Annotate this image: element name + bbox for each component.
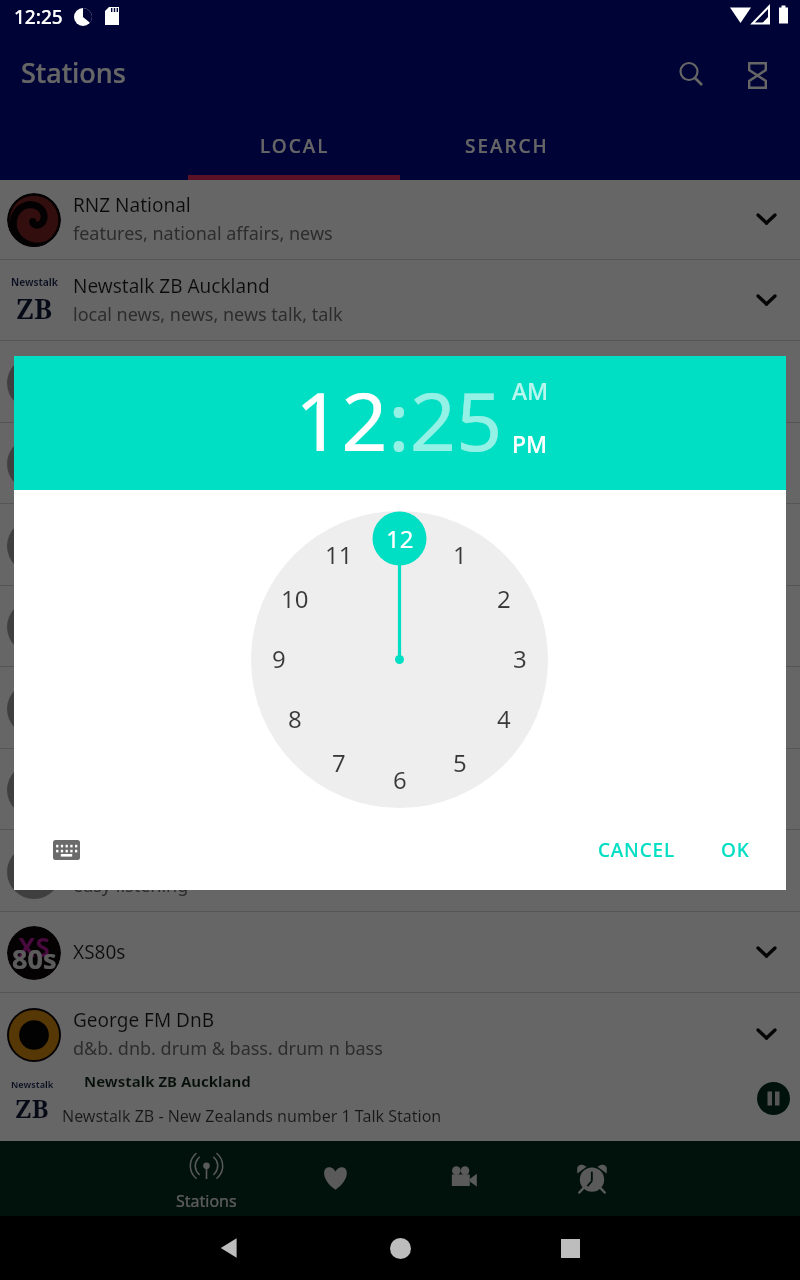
button[interactable]: Recents: [500, 1216, 640, 1280]
staticText: 8: [288, 702, 302, 735]
staticText: Radio Live: [73, 1088, 164, 1114]
staticText: CANCEL: [598, 837, 675, 863]
button[interactable]: Newstalk: [0, 260, 800, 341]
staticText: PM: [512, 428, 548, 459]
button[interactable]: CANCEL: [587, 826, 685, 874]
button[interactable]: 11: [315, 534, 363, 574]
button[interactable]: XS: [0, 912, 800, 993]
staticText: 6: [393, 763, 407, 796]
button[interactable]: Newstalk: [0, 1062, 800, 1141]
button[interactable]: Alarms: [528, 1141, 656, 1216]
staticText: Coast: [73, 844, 124, 870]
button[interactable]: Mai FM: [0, 505, 800, 586]
button[interactable]: LOCAL: [188, 116, 400, 176]
staticText: Stations: [176, 1190, 237, 1212]
staticText: SEARCH: [465, 133, 549, 159]
button[interactable]: Coast: [0, 831, 800, 912]
button[interactable]: 9: [255, 638, 303, 678]
button[interactable]: 2: [480, 578, 528, 618]
button[interactable]: Sleep timer: [729, 47, 785, 103]
button[interactable]: Expand: [736, 352, 796, 412]
staticText: Newstalk ZB Auckland: [84, 1071, 251, 1091]
button[interactable]: Expand: [736, 596, 796, 656]
staticText: Newstalk ZB Auckland: [73, 273, 270, 299]
button[interactable]: 4: [480, 698, 528, 738]
staticText: 2: [497, 582, 511, 615]
button[interactable]: PM: [512, 428, 548, 459]
staticText: OK: [721, 837, 750, 863]
button[interactable]: Home: [330, 1216, 470, 1280]
button[interactable]: Expand: [736, 515, 796, 575]
button[interactable]: 10: [271, 578, 319, 618]
staticText: The Rock: [73, 355, 154, 381]
staticText: 80s: [12, 940, 57, 977]
button[interactable]: Stations: [142, 1141, 270, 1216]
button[interactable]: Video: [400, 1141, 528, 1216]
button[interactable]: Pause: [757, 1082, 790, 1115]
button[interactable]: ZM: [0, 749, 800, 830]
staticText: Newstalk ZB - New Zealands number 1 Talk…: [62, 1105, 442, 1127]
staticText: Newstalk: [11, 275, 58, 289]
button[interactable]: Expand: [736, 678, 796, 738]
staticText: 12:25: [14, 4, 63, 30]
button[interactable]: 7: [315, 742, 363, 782]
staticText: d&b. dnb. drum & bass. drum n bass: [73, 1036, 383, 1061]
button[interactable]: George FM DnB: [0, 994, 800, 1075]
button[interactable]: 6: [376, 759, 424, 799]
button[interactable]: Expand: [736, 841, 796, 901]
staticText: 4: [497, 702, 511, 735]
button[interactable]: Keyboard input: [42, 826, 90, 874]
button[interactable]: Expand: [736, 433, 796, 493]
button[interactable]: The Edge: [0, 586, 800, 667]
button[interactable]: Expand: [736, 270, 796, 330]
staticText: features, national affairs, news: [73, 221, 333, 246]
button[interactable]: 3: [496, 638, 544, 678]
button[interactable]: Expand: [736, 1004, 796, 1064]
button[interactable]: AM: [512, 375, 549, 406]
staticText: 3: [513, 642, 527, 675]
button[interactable]: 1: [436, 534, 484, 574]
button[interactable]: :25: [388, 364, 503, 474]
button[interactable]: Favourites: [271, 1141, 399, 1216]
button[interactable]: Expand: [736, 189, 796, 249]
button[interactable]: Radio Hauraki: [0, 423, 800, 504]
button[interactable]: 12: [295, 364, 388, 474]
staticText: news, talk: [73, 1117, 158, 1142]
staticText: XS: [18, 929, 50, 964]
button[interactable]: Back: [160, 1216, 300, 1280]
button[interactable]: Radio Live: [0, 1075, 800, 1156]
button[interactable]: Expand: [736, 759, 796, 819]
button[interactable]: 8: [271, 698, 319, 738]
button[interactable]: RNZ National: [0, 179, 800, 260]
staticText: easy listening: [73, 873, 189, 898]
staticText: George FM DnB: [73, 1007, 215, 1033]
button[interactable]: The Rock: [0, 342, 800, 423]
button[interactable]: Expand: [736, 922, 796, 982]
button[interactable]: OK: [702, 826, 768, 874]
staticText: 7: [332, 746, 346, 779]
staticText: 12: [386, 522, 414, 555]
staticText: RNZ National: [73, 192, 191, 218]
staticText: LOCAL: [260, 133, 330, 159]
button[interactable]: 12: [376, 518, 424, 558]
staticText: XS80s: [73, 939, 126, 965]
button[interactable]: SEARCH: [400, 116, 612, 176]
staticText: Stations: [21, 54, 126, 91]
button[interactable]: 5: [436, 742, 484, 782]
button[interactable]: Expand: [736, 1085, 796, 1145]
button[interactable]: More FM: [0, 668, 800, 749]
staticText: 1: [453, 538, 467, 571]
staticText: local news, news, news talk, talk: [73, 302, 343, 327]
staticText: 11: [325, 538, 353, 571]
button[interactable]: Search: [664, 47, 720, 103]
